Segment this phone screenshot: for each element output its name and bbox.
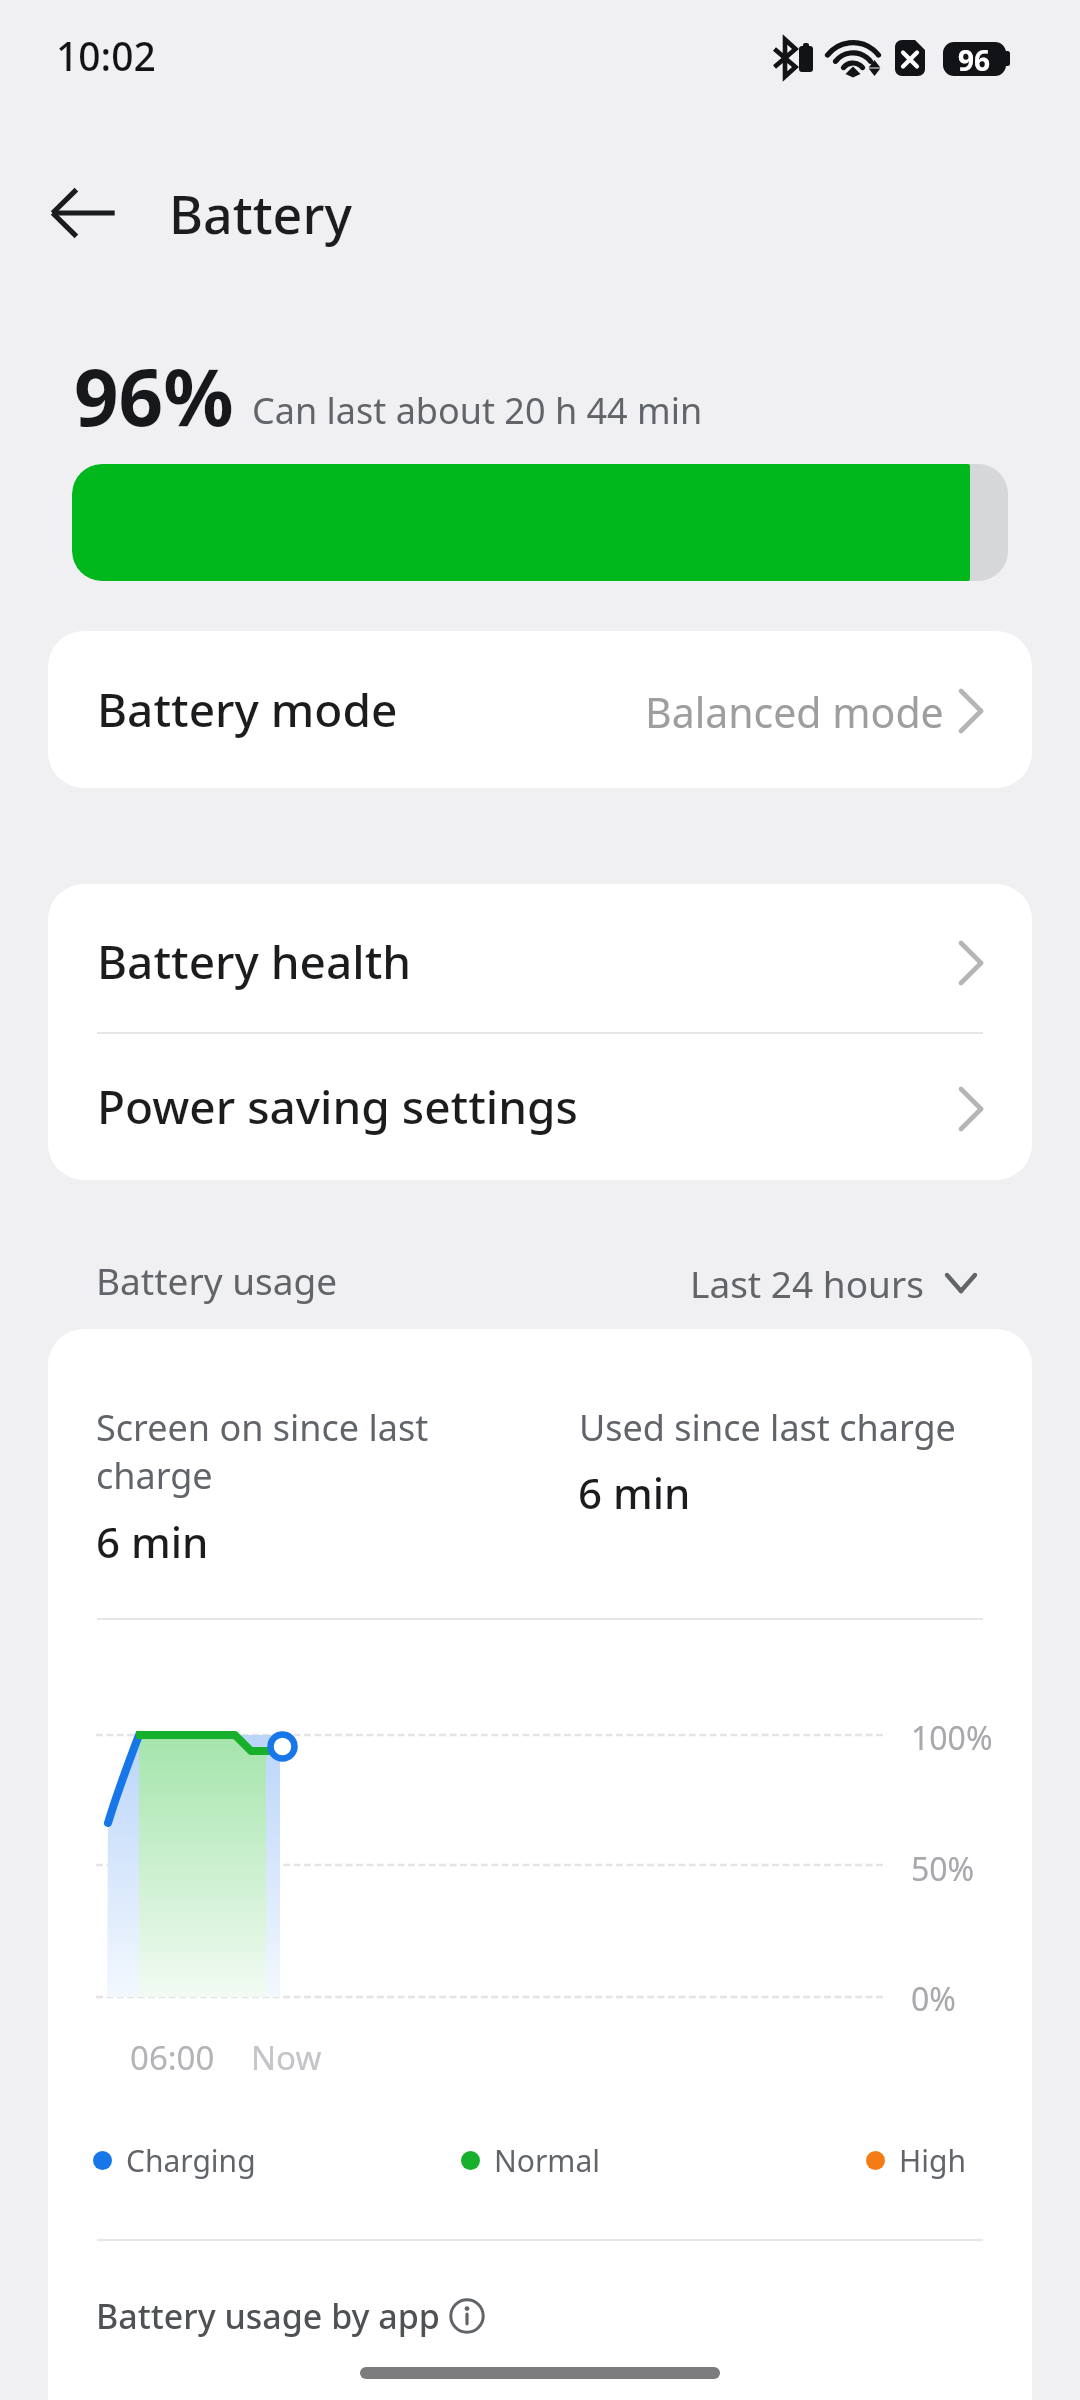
staticText: 06:00 (130, 2035, 215, 2080)
button[interactable]: Battery mode (48, 631, 1032, 788)
staticText: 10:02 (56, 29, 156, 82)
button[interactable]: Back (38, 168, 128, 258)
button[interactable]: Battery health (48, 884, 1032, 1032)
staticText: Power saving settings (97, 1075, 578, 1138)
staticText: 6 min (96, 1513, 209, 1570)
staticText: Battery health (97, 930, 412, 993)
staticText: Battery mode (97, 678, 398, 741)
staticText: 100% (911, 1716, 993, 1760)
staticText: 6 min (578, 1464, 691, 1521)
staticText: 96% (74, 343, 234, 449)
button[interactable]: Battery usage by app (96, 2287, 485, 2345)
staticText: Battery (169, 178, 352, 249)
staticText: Balanced mode (645, 684, 944, 740)
staticText: Now (251, 2035, 322, 2080)
button[interactable]: Last 24 hours (690, 1258, 977, 1308)
button[interactable]: Power saving settings (48, 1034, 1032, 1180)
staticText: 0% (911, 1977, 956, 2021)
staticText: High (899, 2140, 966, 2181)
staticText: Screen on since last charge (96, 1403, 429, 1499)
staticText: Normal (494, 2140, 600, 2181)
staticText: Used since last charge (579, 1403, 956, 1452)
staticText: Last 24 hours (690, 1258, 924, 1308)
staticText: Can last about 20 h 44 min (252, 386, 703, 435)
staticText: Charging (126, 2140, 256, 2181)
staticText: Battery usage (96, 1255, 338, 1305)
staticText: 50% (911, 1847, 975, 1891)
staticText: Battery usage by app (96, 2293, 440, 2339)
staticText: 96 (958, 42, 991, 75)
